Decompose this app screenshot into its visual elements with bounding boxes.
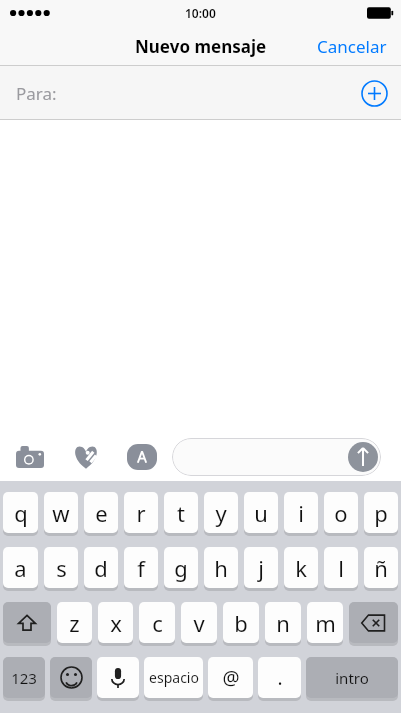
staticText: v	[193, 608, 205, 638]
staticText: Cancelar	[317, 35, 387, 58]
staticText: m	[315, 608, 336, 638]
button[interactable]: w	[44, 492, 78, 533]
button[interactable]: z	[57, 602, 92, 643]
button[interactable]: i	[284, 492, 318, 533]
button[interactable]: f	[124, 547, 158, 588]
staticText: x	[110, 608, 122, 638]
button[interactable]: u	[244, 492, 278, 533]
button[interactable]: q	[3, 492, 38, 533]
staticText: z	[69, 608, 80, 638]
button[interactable]: Enviar	[172, 438, 381, 476]
button[interactable]: Emoji	[50, 657, 92, 698]
staticText: c	[152, 608, 163, 638]
button[interactable]: Cámara	[14, 441, 46, 473]
button[interactable]: l	[324, 547, 358, 588]
button[interactable]: v	[181, 602, 217, 643]
staticText: Nuevo mensaje	[135, 35, 267, 58]
staticText: j	[258, 553, 264, 583]
staticText: ñ	[374, 553, 388, 583]
staticText: f	[137, 553, 145, 583]
button[interactable]: k	[284, 547, 318, 588]
button[interactable]: j	[244, 547, 278, 588]
button[interactable]: m	[307, 602, 343, 643]
staticText: y	[215, 498, 227, 528]
button[interactable]: e	[84, 492, 118, 533]
staticText: k	[295, 553, 307, 583]
staticText: t	[177, 498, 185, 528]
staticText: 10:00	[185, 5, 216, 21]
button[interactable]: 123	[3, 657, 45, 698]
button[interactable]: h	[204, 547, 238, 588]
button[interactable]: Borrar	[349, 602, 398, 643]
button[interactable]: n	[265, 602, 301, 643]
staticText: n	[276, 608, 290, 638]
button[interactable]: espacio	[144, 657, 203, 698]
staticText: l	[338, 553, 344, 583]
button[interactable]: b	[223, 602, 259, 643]
button[interactable]: @	[208, 657, 253, 698]
staticText: a	[14, 553, 27, 583]
button[interactable]: Añadir contacto	[359, 78, 389, 108]
staticText: r	[136, 498, 146, 528]
button[interactable]: r	[124, 492, 158, 533]
button[interactable]: Cancelar	[303, 27, 401, 66]
button[interactable]: intro	[306, 657, 398, 698]
staticText: i	[298, 498, 304, 528]
button[interactable]: Mayúsculas	[3, 602, 51, 643]
button[interactable]: Dictado	[97, 657, 139, 698]
button[interactable]: a	[3, 547, 38, 588]
staticText: @	[222, 665, 240, 691]
button[interactable]: ñ	[364, 547, 398, 588]
staticText: g	[174, 553, 188, 583]
staticText: p	[374, 498, 388, 528]
staticText: Para:	[16, 82, 57, 105]
button[interactable]: c	[139, 602, 175, 643]
staticText: intro	[335, 668, 369, 688]
staticText: d	[94, 553, 108, 583]
button[interactable]: .	[258, 657, 301, 698]
staticText: b	[234, 608, 248, 638]
button[interactable]: p	[364, 492, 398, 533]
button[interactable]: d	[84, 547, 118, 588]
button[interactable]: g	[164, 547, 198, 588]
staticText: 123	[11, 668, 37, 688]
staticText: espacio	[149, 668, 199, 687]
staticText: .	[277, 665, 283, 691]
staticText: e	[95, 498, 108, 528]
button[interactable]: y	[204, 492, 238, 533]
staticText: w	[52, 498, 70, 528]
staticText: u	[254, 498, 268, 528]
button[interactable]: Enviar	[348, 442, 378, 472]
button[interactable]: o	[324, 492, 358, 533]
button[interactable]: Digital Touch	[70, 441, 102, 473]
button[interactable]: App Store	[126, 441, 158, 473]
staticText: h	[214, 553, 228, 583]
staticText: o	[334, 498, 348, 528]
staticText: q	[14, 498, 28, 528]
button[interactable]: t	[164, 492, 198, 533]
button[interactable]: s	[44, 547, 78, 588]
staticText: s	[56, 553, 67, 583]
button[interactable]: x	[98, 602, 133, 643]
